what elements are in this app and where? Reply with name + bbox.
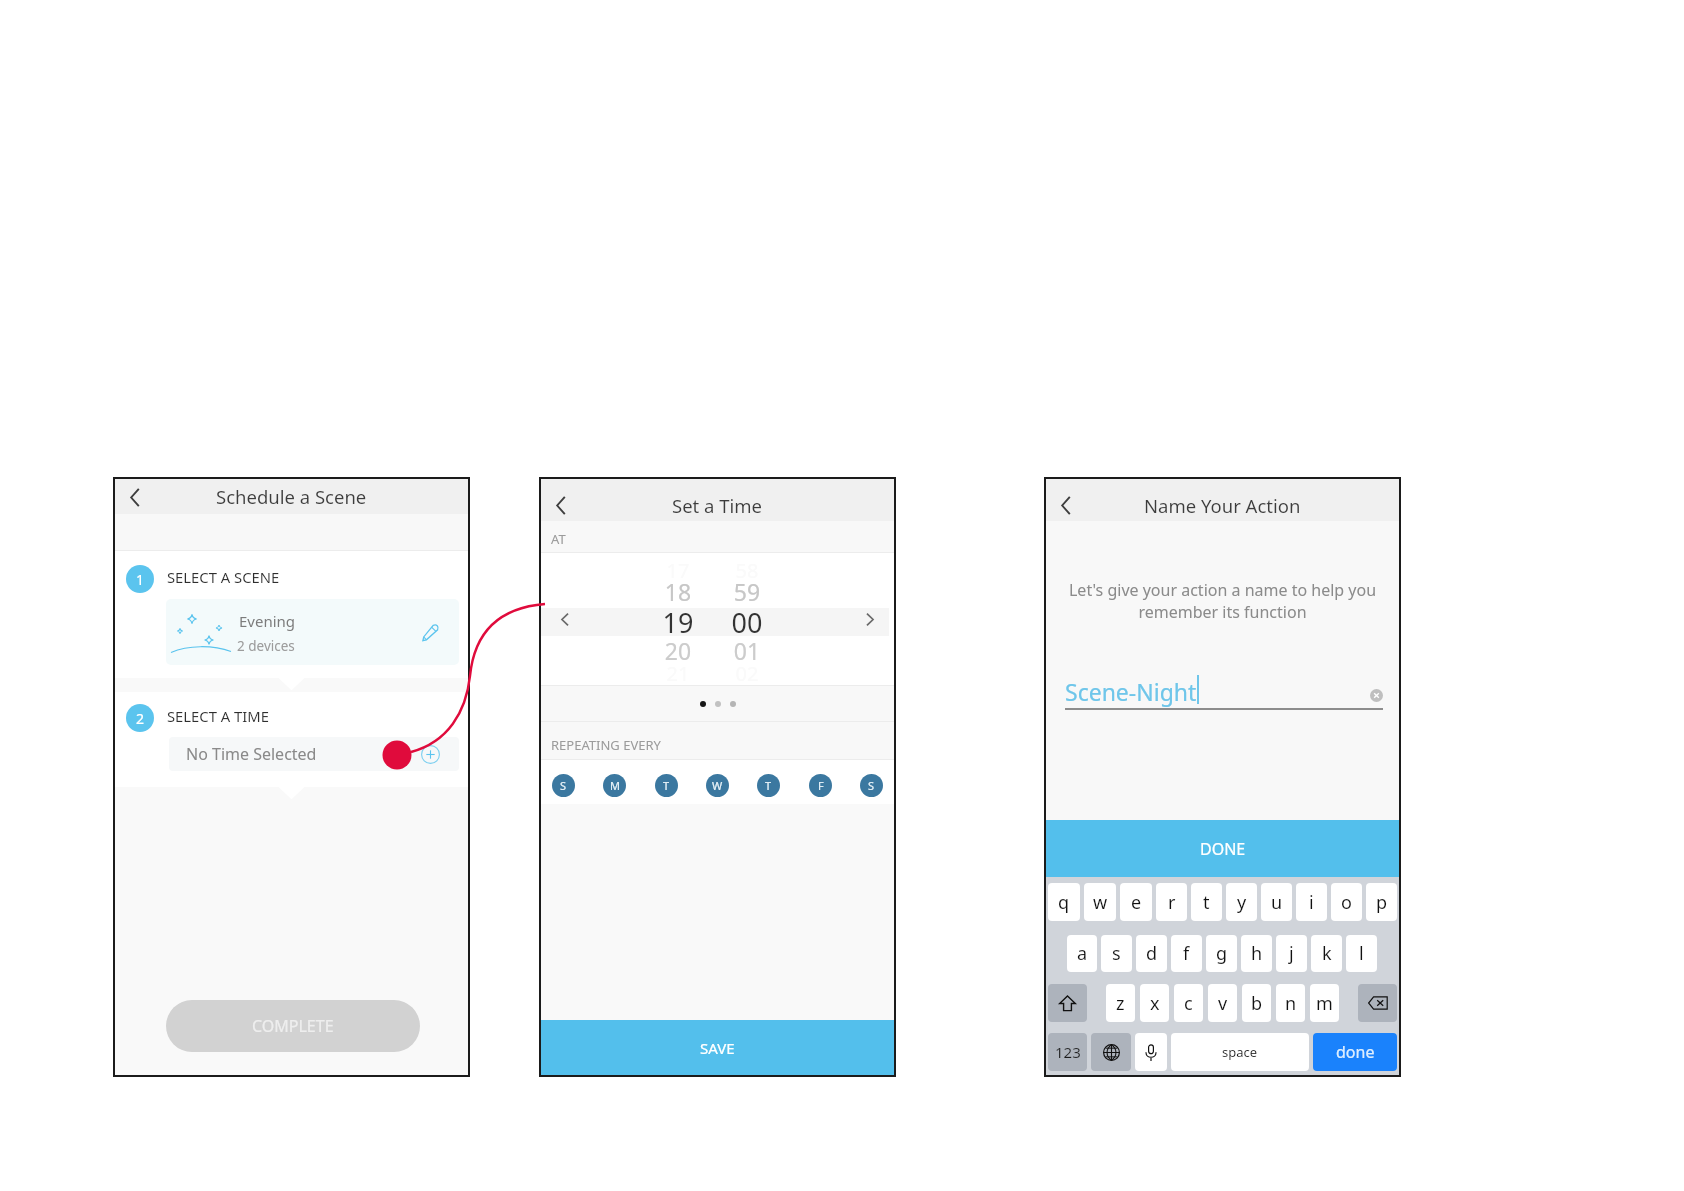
button[interactable]: w	[1084, 883, 1116, 921]
button[interactable]: a	[1067, 935, 1097, 972]
staticText: 2 devices	[237, 637, 295, 655]
button[interactable]: x	[1140, 984, 1169, 1022]
button[interactable]: o	[1331, 883, 1362, 921]
button[interactable]: j	[1276, 935, 1307, 972]
staticText: SAVE	[700, 1038, 735, 1058]
button[interactable]: done	[1313, 1033, 1397, 1071]
staticText: m	[1316, 991, 1333, 1016]
button[interactable]: c	[1174, 984, 1203, 1022]
staticText: 123	[1055, 1042, 1081, 1062]
staticText: g	[1216, 941, 1228, 966]
staticText: Evening	[239, 611, 296, 631]
button[interactable]: p	[1366, 883, 1397, 921]
button[interactable]: No Time Selected	[169, 737, 459, 771]
button[interactable]: t	[1191, 883, 1222, 921]
staticText: i	[1309, 890, 1314, 915]
button[interactable]: b	[1242, 984, 1271, 1022]
staticText: space	[1222, 1043, 1258, 1061]
staticText: SELECT A SCENE	[167, 567, 280, 587]
button[interactable]: l	[1346, 935, 1377, 972]
staticText: Scene-Night	[1065, 676, 1197, 707]
button[interactable]: s	[1101, 935, 1132, 972]
button[interactable]: Evening	[166, 599, 459, 665]
staticText: COMPLETE	[252, 1015, 334, 1037]
staticText: S	[868, 778, 875, 793]
button[interactable]: SAVE	[541, 1020, 894, 1075]
button[interactable]: q	[1048, 883, 1080, 921]
staticText: AT	[551, 530, 566, 548]
button[interactable]: Clear text	[1370, 689, 1383, 702]
button[interactable]: Change language	[1091, 1033, 1131, 1071]
staticText: 00	[722, 604, 772, 641]
button[interactable]: f	[1171, 935, 1202, 972]
button[interactable]: Previous	[552, 606, 578, 632]
staticText: y	[1237, 890, 1247, 915]
staticText: a	[1077, 941, 1088, 966]
button[interactable]: Next	[857, 606, 883, 632]
button[interactable]: COMPLETE	[166, 1000, 420, 1052]
staticText: T	[663, 778, 670, 793]
button[interactable]: d	[1136, 935, 1167, 972]
button[interactable]: F	[809, 774, 832, 797]
button[interactable]: space	[1171, 1033, 1309, 1071]
button[interactable]: Back	[122, 484, 148, 510]
staticText: b	[1251, 991, 1263, 1016]
staticText: e	[1131, 890, 1142, 915]
staticText: 21	[653, 660, 703, 687]
button[interactable]: Numbers	[1048, 1033, 1087, 1071]
staticText: c	[1184, 991, 1193, 1016]
staticText: w	[1093, 890, 1108, 915]
button[interactable]: Edit scene	[422, 624, 439, 641]
button[interactable]: g	[1206, 935, 1237, 972]
staticText: o	[1341, 890, 1352, 915]
staticText: 01	[722, 635, 772, 666]
button[interactable]: Shift	[1048, 984, 1087, 1022]
button[interactable]: v	[1208, 984, 1237, 1022]
button[interactable]: Delete	[1358, 984, 1397, 1022]
staticText: Let's give your action a name to help yo…	[1056, 579, 1389, 623]
button[interactable]: z	[1106, 984, 1135, 1022]
staticText: done	[1336, 1041, 1375, 1063]
button[interactable]: S	[552, 774, 575, 797]
staticText: 2	[136, 709, 145, 728]
staticText: n	[1285, 991, 1297, 1016]
button[interactable]: Back	[1053, 492, 1079, 518]
staticText: x	[1150, 991, 1160, 1016]
button[interactable]: M	[603, 774, 626, 797]
button[interactable]: e	[1120, 883, 1152, 921]
button[interactable]: k	[1311, 935, 1342, 972]
button[interactable]: Add time	[421, 745, 440, 764]
button[interactable]: DONE	[1046, 820, 1399, 877]
button[interactable]: m	[1310, 984, 1339, 1022]
staticText: 19	[653, 604, 703, 641]
button[interactable]: y	[1226, 883, 1257, 921]
button[interactable]: S	[860, 774, 883, 797]
button[interactable]: W	[706, 774, 729, 797]
staticText: M	[610, 778, 620, 793]
staticText: Name Your Action	[1144, 493, 1301, 518]
button[interactable]: r	[1156, 883, 1187, 921]
staticText: f	[1183, 941, 1190, 966]
staticText: No Time Selected	[186, 743, 317, 765]
staticText: s	[1112, 941, 1121, 966]
staticText: u	[1271, 890, 1283, 915]
staticText: W	[712, 778, 723, 793]
button[interactable]: T	[757, 774, 780, 797]
staticText: Schedule a Scene	[216, 484, 367, 509]
staticText: S	[560, 778, 567, 793]
staticText: t	[1203, 890, 1210, 915]
staticText: REPEATING EVERY	[551, 736, 661, 754]
button[interactable]: Voice input	[1135, 1033, 1167, 1071]
button[interactable]: n	[1276, 984, 1305, 1022]
staticText: l	[1359, 941, 1364, 966]
button[interactable]: i	[1296, 883, 1327, 921]
button[interactable]: Back	[548, 492, 574, 518]
button[interactable]: h	[1241, 935, 1272, 972]
button[interactable]: u	[1261, 883, 1292, 921]
staticText: k	[1322, 941, 1332, 966]
staticText: 59	[722, 576, 772, 607]
staticText: 18	[653, 576, 703, 607]
button[interactable]: T	[655, 774, 678, 797]
